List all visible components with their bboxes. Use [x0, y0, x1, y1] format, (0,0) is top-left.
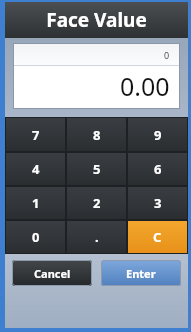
button[interactable]: 2: [67, 187, 126, 219]
button[interactable]: 6: [128, 153, 187, 185]
button[interactable]: 0: [6, 221, 65, 253]
button[interactable]: C: [128, 221, 187, 253]
staticText: Cancel: [34, 266, 71, 281]
staticText: 4: [32, 160, 40, 178]
button[interactable]: 9: [128, 118, 187, 151]
staticText: 9: [154, 126, 162, 144]
button[interactable]: 7: [6, 118, 65, 151]
staticText: .: [95, 228, 99, 246]
button[interactable]: 5: [67, 153, 126, 185]
staticText: 1: [32, 194, 40, 212]
button[interactable]: 4: [6, 153, 65, 185]
button[interactable]: 8: [67, 118, 126, 151]
staticText: 6: [154, 160, 162, 178]
staticText: 7: [32, 126, 40, 144]
staticText: 3: [154, 194, 162, 212]
staticText: 0: [164, 49, 170, 61]
button[interactable]: .: [67, 221, 126, 253]
button[interactable]: Cancel: [12, 260, 92, 286]
staticText: Face Value: [46, 7, 147, 33]
button[interactable]: Enter: [101, 260, 181, 286]
staticText: 0: [32, 228, 40, 246]
staticText: 8: [93, 126, 101, 144]
button[interactable]: 1: [6, 187, 65, 219]
staticText: Enter: [126, 266, 156, 281]
staticText: 2: [93, 194, 101, 212]
staticText: C: [153, 228, 162, 246]
button[interactable]: 3: [128, 187, 187, 219]
staticText: 0.00: [120, 69, 170, 103]
staticText: 5: [93, 160, 101, 178]
